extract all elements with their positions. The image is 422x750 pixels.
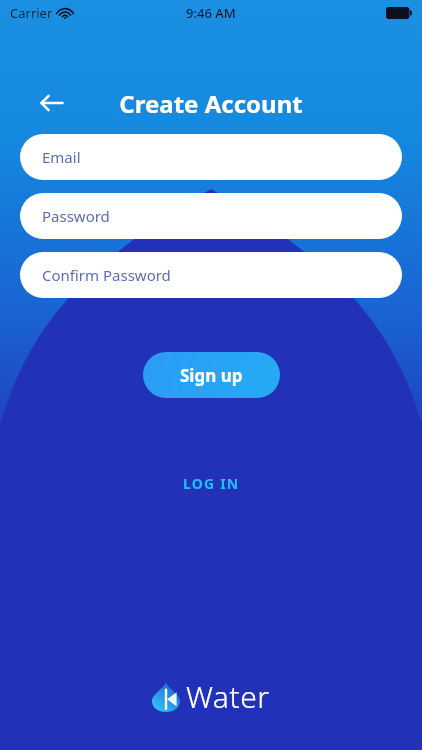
staticText: Create Account <box>119 87 303 120</box>
staticText: Confirm Password <box>42 265 171 285</box>
staticText: Sign up <box>180 364 243 387</box>
button[interactable]: LOG IN <box>169 468 254 499</box>
staticText: LOG IN <box>183 474 240 493</box>
staticText: 9:46 AM <box>186 4 236 22</box>
button[interactable]: Password <box>20 193 402 239</box>
staticText: Carrier <box>10 4 53 22</box>
staticText: Water <box>186 676 270 717</box>
staticText: Email <box>42 147 81 167</box>
button[interactable]: Sign up <box>143 352 280 398</box>
button[interactable]: Back <box>30 81 74 125</box>
staticText: Password <box>42 206 110 226</box>
button[interactable]: Confirm Password <box>20 252 402 298</box>
button[interactable]: Email <box>20 134 402 180</box>
